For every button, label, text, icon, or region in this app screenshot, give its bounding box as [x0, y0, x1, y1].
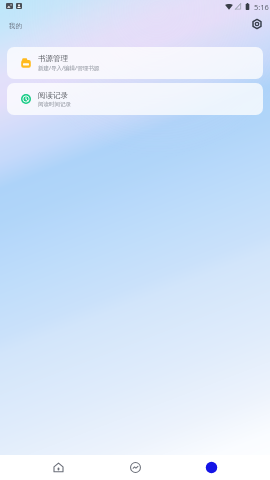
button[interactable]: 书源管理 [7, 47, 263, 79]
staticText: 5:16 [254, 2, 269, 12]
button[interactable]: Settings [247, 14, 267, 34]
staticText: 阅读记录 [38, 91, 68, 100]
button[interactable]: 阅读记录 [7, 83, 263, 115]
staticText: 我的 [9, 22, 22, 30]
button[interactable]: Profile [191, 455, 231, 480]
button[interactable]: Discover [115, 455, 155, 480]
staticText: 书源管理 [38, 54, 68, 63]
staticText: 新建/导入/编辑/管理书源 [38, 64, 100, 72]
button[interactable]: Home [38, 455, 78, 480]
staticText: 阅读时间记录 [38, 101, 71, 108]
